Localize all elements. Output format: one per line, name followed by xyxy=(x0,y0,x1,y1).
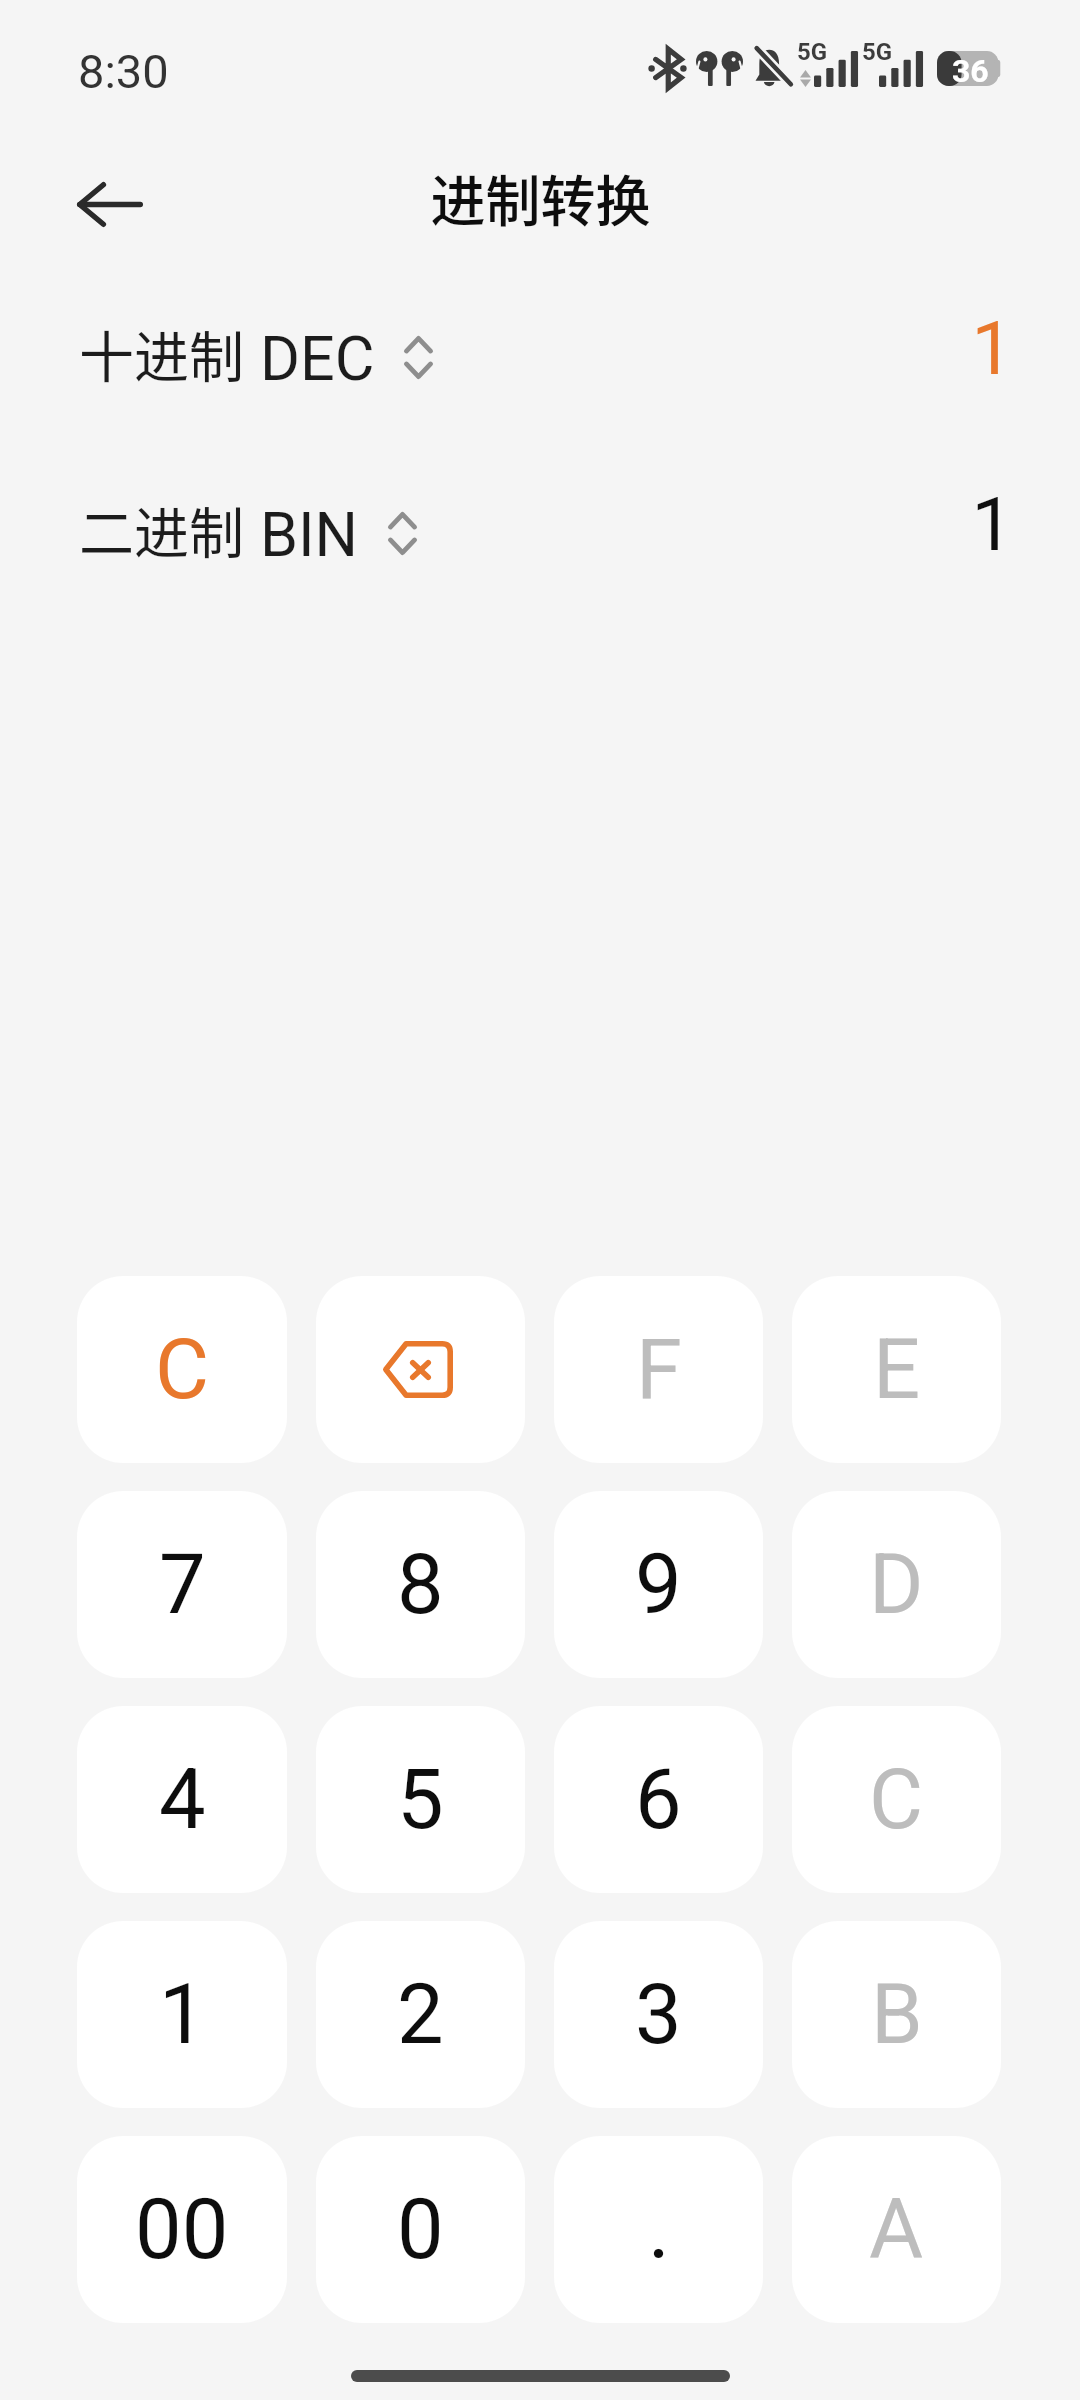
button[interactable]: 0 xyxy=(316,2136,525,2323)
staticText: D xyxy=(869,1536,924,1633)
button[interactable]: 9 xyxy=(554,1491,763,1678)
staticText: DEC xyxy=(260,323,375,394)
other: Backspace xyxy=(383,1341,453,1398)
button[interactable]: 3 xyxy=(554,1921,763,2108)
button[interactable]: 7 xyxy=(77,1491,287,1678)
staticText: 9 xyxy=(635,1536,682,1633)
button[interactable]: 5 xyxy=(316,1706,525,1893)
staticText: 1 xyxy=(159,1966,206,2063)
staticText: 8 xyxy=(397,1536,444,1633)
button[interactable]: F xyxy=(554,1276,763,1463)
staticText: 十进制 xyxy=(79,313,245,393)
staticText: 6 xyxy=(635,1751,682,1848)
button[interactable]: Back xyxy=(60,160,160,248)
staticText: 00 xyxy=(135,2181,229,2278)
button[interactable]: 二进制 xyxy=(0,487,1080,571)
button[interactable]: A xyxy=(792,2136,1001,2323)
staticText: 5G xyxy=(862,38,893,66)
button[interactable]: B xyxy=(792,1921,1001,2108)
staticText: A xyxy=(869,2181,924,2278)
button[interactable]: 1 xyxy=(77,1921,287,2108)
button[interactable]: 8 xyxy=(316,1491,525,1678)
staticText: 5 xyxy=(397,1751,444,1848)
staticText: 2 xyxy=(397,1966,444,2063)
staticText: B xyxy=(871,1966,923,2063)
staticText: 5G xyxy=(797,38,828,66)
staticText: BIN xyxy=(260,499,359,570)
staticText: 1 xyxy=(971,481,1013,565)
staticText: 7 xyxy=(159,1536,206,1633)
staticText: C xyxy=(869,1751,924,1848)
button[interactable]: C xyxy=(792,1706,1001,1893)
staticText: . xyxy=(648,2181,670,2278)
button[interactable]: D xyxy=(792,1491,1001,1678)
staticText: F xyxy=(636,1321,682,1418)
staticText: E xyxy=(873,1321,921,1418)
staticText: 4 xyxy=(159,1751,206,1848)
staticText: 1 xyxy=(971,305,1013,389)
button[interactable]: C xyxy=(77,1276,287,1463)
staticText: 进制转换 xyxy=(430,157,651,237)
button[interactable]: E xyxy=(792,1276,1001,1463)
staticText: C xyxy=(155,1321,210,1418)
button[interactable]: 6 xyxy=(554,1706,763,1893)
button[interactable]: 4 xyxy=(77,1706,287,1893)
button[interactable]: 00 xyxy=(77,2136,287,2323)
button[interactable]: 十进制 xyxy=(0,311,1080,395)
staticText: 36 xyxy=(952,52,989,90)
button[interactable]: . xyxy=(554,2136,763,2323)
button[interactable]: 2 xyxy=(316,1921,525,2108)
staticText: 8:30 xyxy=(78,44,169,99)
button[interactable]: Backspace xyxy=(316,1276,525,1463)
staticText: 3 xyxy=(635,1966,682,2063)
staticText: 二进制 xyxy=(79,489,245,569)
staticText: 0 xyxy=(397,2181,444,2278)
